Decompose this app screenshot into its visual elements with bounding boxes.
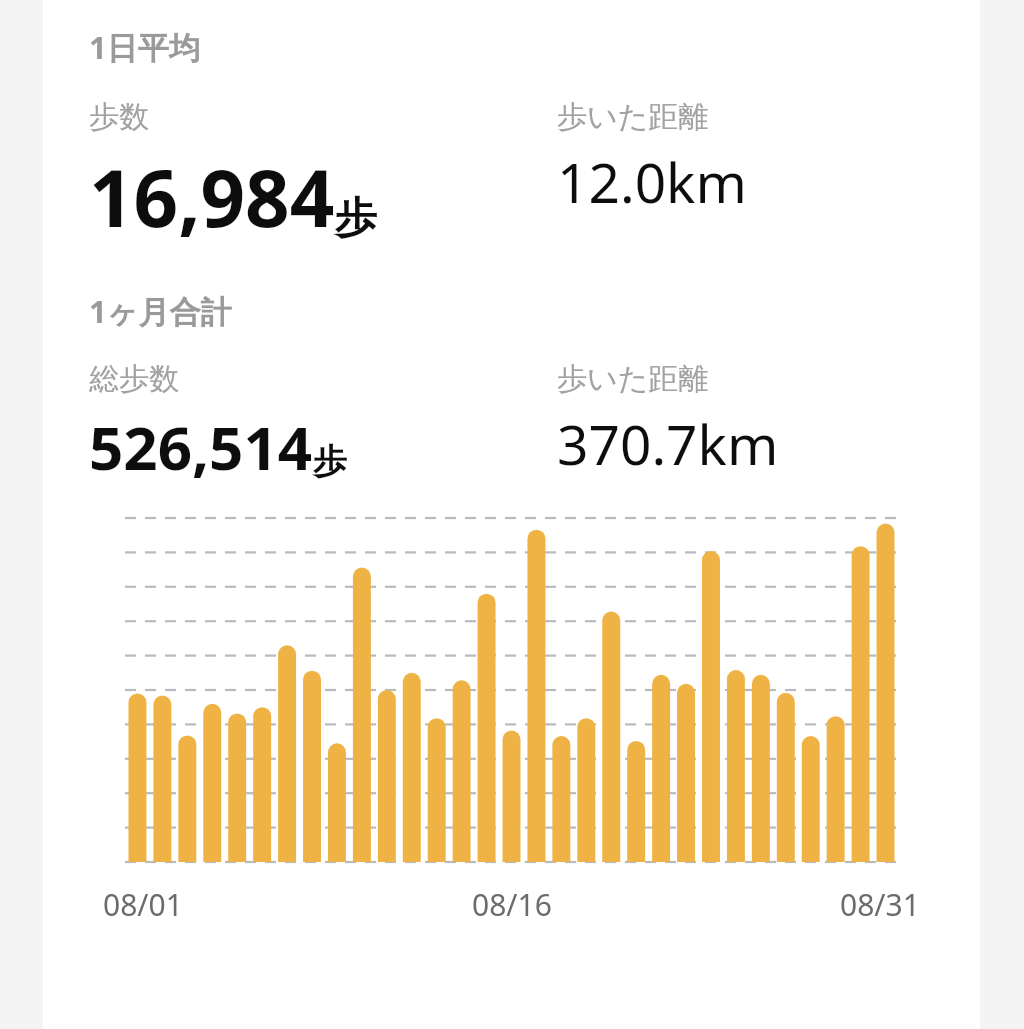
staticText: 08/16 [472,884,552,925]
staticText: 08/31 [840,884,920,925]
staticText: 総歩数 [89,360,179,398]
staticText: 歩 [335,192,377,245]
button[interactable]: 日別歩数グラフ [43,508,980,880]
staticText: 歩 [313,440,347,483]
staticText: 歩いた距離 [557,360,709,398]
staticText: 1日平均 [89,26,200,68]
staticText: 08/01 [103,884,183,925]
staticText: 370.7km [557,406,779,481]
staticText: 526,514 [89,406,313,488]
staticText: 16,984 [89,144,335,250]
staticText: 歩いた距離 [557,98,709,136]
staticText: 1ヶ月合計 [89,290,232,332]
staticText: 12.0km [557,144,747,219]
staticText: 歩数 [89,98,149,136]
